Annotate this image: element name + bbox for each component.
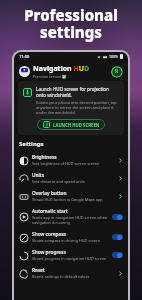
button[interactable]	[112, 252, 123, 258]
staticText: Navigation HUD	[33, 64, 90, 74]
button[interactable]: Units	[19, 169, 123, 187]
staticText: 100%	[109, 54, 118, 59]
staticText: Settings	[19, 140, 44, 148]
button[interactable]: Automatic start	[19, 205, 123, 228]
staticText: Automatic start	[32, 208, 68, 215]
staticText: Professional settings	[24, 5, 118, 43]
staticText: Sets brightness of HUD screen screen	[32, 161, 99, 166]
button[interactable]: Show compass	[19, 228, 123, 246]
button[interactable]: Launch HUD screen for projection onto wi…	[18, 81, 124, 135]
button[interactable]: Rewards	[110, 65, 123, 78]
staticText: Shows compass in driving HUD screen	[32, 238, 101, 243]
staticText: Starts app in navigation HUD screen when…	[32, 215, 109, 225]
staticText: Show compass	[32, 231, 66, 238]
staticText: Reset	[32, 267, 45, 274]
staticText: Shows HUD button in Google Maps app	[32, 197, 103, 202]
staticText: Overlay button	[32, 190, 67, 197]
staticText: Show progress	[32, 249, 66, 256]
staticText: Shows progress in navigation HUD screen	[32, 256, 107, 261]
staticText: 11:00	[19, 54, 30, 59]
staticText: R	[115, 68, 119, 75]
staticText: Units	[32, 172, 45, 179]
button[interactable]: Overlay button	[19, 187, 123, 205]
button[interactable]	[112, 234, 123, 240]
button[interactable]	[112, 214, 123, 220]
button[interactable]: Show progress	[19, 246, 123, 264]
staticText: Premium version ✅	[33, 74, 67, 79]
staticText: Brightness	[32, 154, 57, 161]
button[interactable]: LAUNCH HUD SCREEN	[37, 119, 105, 130]
staticText: Launch HUD screen for projection onto wi…	[36, 86, 119, 98]
staticText: LAUNCH HUD SCREEN	[53, 122, 100, 128]
staticText: Resets settings to default values	[32, 274, 90, 279]
staticText: Rotate your phone into desired position,…	[36, 100, 119, 115]
button[interactable]: Reset	[19, 264, 123, 282]
staticText: Sets distance and speed units	[32, 179, 85, 184]
button[interactable]: Brightness	[19, 151, 123, 169]
